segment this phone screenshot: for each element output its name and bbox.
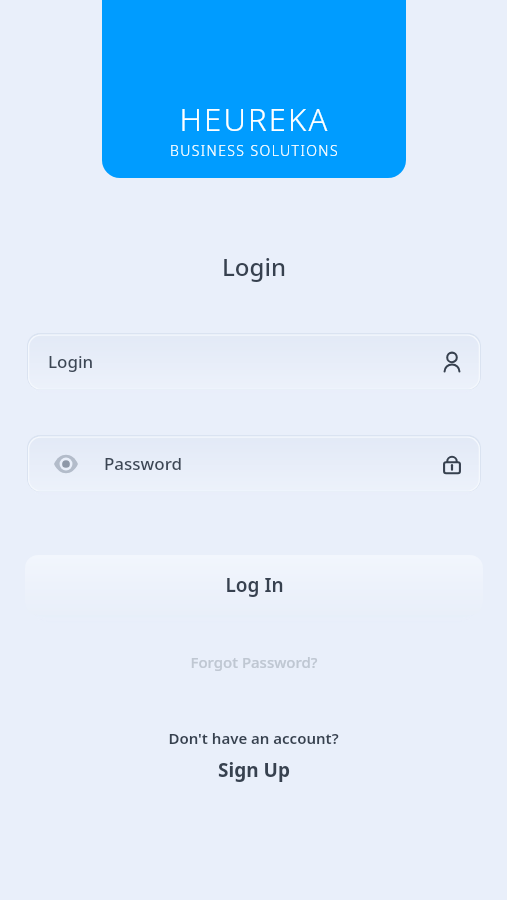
button[interactable]: Login — [27, 333, 481, 390]
staticText: Login — [222, 250, 286, 283]
button[interactable]: Password locked — [432, 444, 472, 484]
staticText: Sign Up — [218, 757, 290, 783]
button[interactable]: Forgot Password? — [180, 648, 328, 676]
staticText: BUSINESS SOLUTIONS — [170, 141, 339, 160]
staticText: HEUREKA — [179, 98, 330, 140]
staticText: Don't have an account? — [168, 728, 339, 748]
button[interactable]: Sign Up — [206, 755, 302, 785]
staticText: Log In — [225, 572, 284, 598]
button[interactable]: Show password — [27, 435, 481, 492]
staticText: Login — [48, 350, 94, 373]
button[interactable]: Account — [432, 342, 472, 382]
staticText: Forgot Password? — [190, 652, 318, 672]
staticText: Password — [104, 452, 183, 475]
button[interactable]: Log In — [25, 555, 483, 615]
button[interactable]: Show password — [50, 448, 82, 480]
